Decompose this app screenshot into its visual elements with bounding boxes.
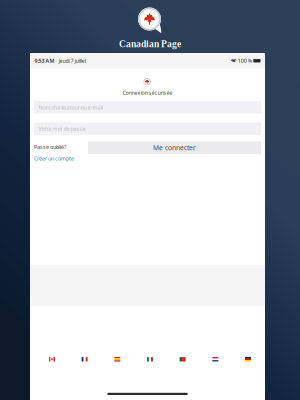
button[interactable]: Canada (49, 357, 55, 361)
staticText: Connexion sécurisée (122, 89, 172, 96)
button[interactable]: Votre mot de passe (34, 122, 261, 135)
staticText: 100 % (238, 57, 252, 64)
button[interactable]: Allemagne (245, 357, 251, 361)
button[interactable]: Nom d'utilisateur ou e-mail (34, 101, 261, 114)
button[interactable]: Italie (147, 357, 153, 361)
button[interactable]: France (82, 357, 88, 361)
button[interactable]: Portugal (180, 357, 186, 361)
button[interactable]: Passe oublié? (34, 143, 66, 150)
staticText: Créer un compte (34, 155, 74, 162)
button[interactable]: Pays-Bas (212, 357, 218, 361)
staticText: Me connecter (153, 143, 196, 152)
button[interactable]: Créer un compte (34, 155, 74, 162)
staticText: jeudi 7 juillet (54, 57, 86, 64)
button[interactable]: Me connecter (88, 141, 261, 154)
button[interactable]: Espagne (114, 357, 120, 361)
staticText: Votre mot de passe (38, 125, 85, 132)
staticText: Canadian Page (119, 39, 181, 49)
staticText: Passe oublié? (34, 143, 66, 150)
staticText: Nom d'utilisateur ou e-mail (38, 104, 102, 111)
staticText: 9:53 AM (34, 57, 54, 64)
